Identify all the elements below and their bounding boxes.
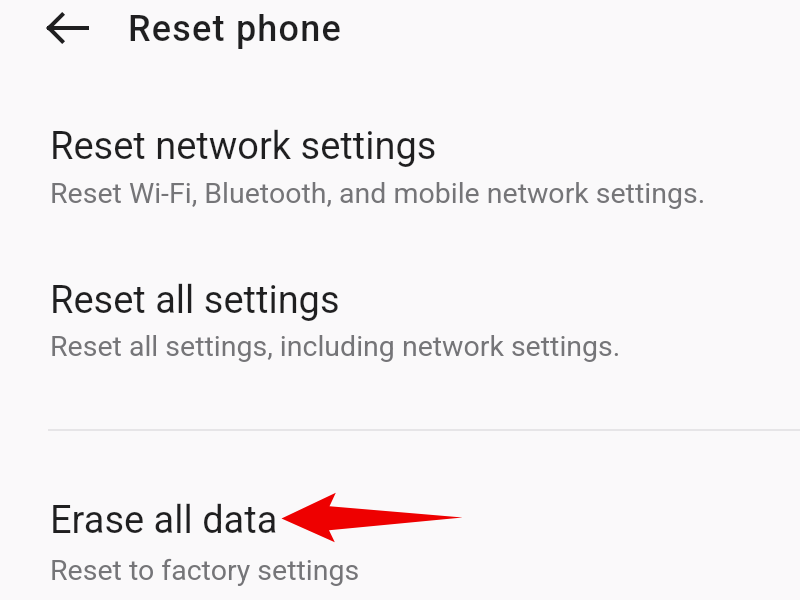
button[interactable]: Back [40, 5, 96, 51]
staticText: Erase all data [50, 498, 278, 543]
staticText: Reset all settings, including network se… [50, 330, 621, 363]
staticText: Reset Wi-Fi, Bluetooth, and mobile netwo… [50, 177, 706, 210]
staticText: Reset all settings [50, 278, 340, 323]
staticText: Reset network settings [50, 124, 437, 169]
button[interactable]: Reset all settings [0, 264, 800, 369]
staticText: Reset phone [128, 8, 342, 50]
button[interactable]: Reset network settings [0, 110, 800, 216]
staticText: Reset to factory settings [50, 554, 360, 587]
button[interactable]: Erase all data [0, 484, 800, 593]
